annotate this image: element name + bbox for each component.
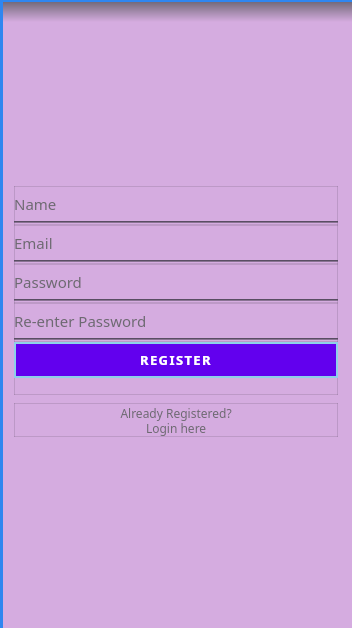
staticText: REGISTER	[140, 351, 212, 369]
button[interactable]: Re-enter Password	[14, 303, 338, 342]
staticText: Password	[14, 272, 82, 292]
staticText: Re-enter Password	[14, 311, 147, 331]
button[interactable]: Name	[14, 186, 338, 225]
button[interactable]: Password	[14, 264, 338, 303]
button[interactable]: Already Registered? Login here	[14, 403, 338, 437]
staticText: Name	[14, 194, 57, 214]
staticText: Already Registered? Login here	[120, 405, 232, 436]
staticText: Email	[14, 233, 53, 253]
button[interactable]: Email	[14, 225, 338, 264]
button[interactable]: REGISTER	[16, 344, 336, 376]
